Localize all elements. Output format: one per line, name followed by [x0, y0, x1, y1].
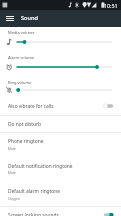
- staticText: Media volume: [8, 30, 35, 35]
- staticText: Mate: [8, 170, 16, 174]
- staticText: Also vibrate for calls: [8, 103, 104, 110]
- button[interactable]: Also vibrate for calls: [0, 98, 121, 114]
- staticText: Phone ringtone: [8, 138, 44, 145]
- staticText: Default notification ringtone: [8, 163, 73, 170]
- staticText: Ring volume: [8, 80, 32, 85]
- button[interactable]: Open navigation drawer: [0, 10, 20, 27]
- button[interactable]: Phone ringtone: [0, 133, 121, 153]
- button[interactable]: Default alarm ringtone: [0, 183, 121, 203]
- staticText: 10:51: [104, 2, 118, 9]
- button[interactable]: Volume slider: [0, 60, 121, 74]
- button[interactable]: Volume slider: [0, 35, 121, 49]
- staticText: Sound: [21, 14, 38, 22]
- staticText: Do not disturb: [8, 121, 41, 128]
- button[interactable]: Volume slider: [0, 83, 121, 97]
- button[interactable]: Default notification ringtone: [0, 158, 121, 178]
- staticText: Screen locking sounds: [8, 212, 104, 216]
- button[interactable]: Screen locking sounds: [0, 207, 121, 216]
- staticText: Default alarm ringtone: [8, 188, 61, 195]
- staticText: Mate: [8, 146, 16, 150]
- button[interactable]: Do not disturb: [0, 116, 121, 132]
- staticText: Oxygen: [8, 196, 20, 200]
- staticText: Alarm volume: [8, 55, 35, 60]
